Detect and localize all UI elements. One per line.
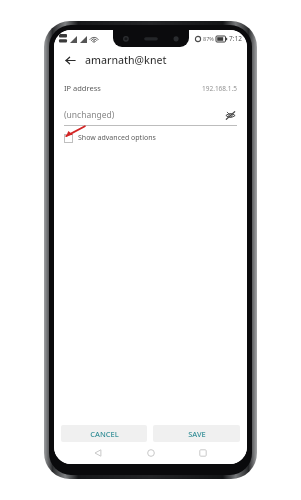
button[interactable]: Show password bbox=[223, 108, 237, 122]
staticText: 7:12 bbox=[229, 34, 242, 43]
button[interactable]: SAVE bbox=[153, 425, 240, 442]
staticText: SAVE bbox=[188, 429, 206, 439]
button[interactable]: Back bbox=[61, 51, 79, 69]
staticText: Show advanced options bbox=[78, 133, 156, 143]
button[interactable]: Back bbox=[90, 445, 106, 461]
staticText: 192.168.1.5 bbox=[202, 84, 237, 93]
staticText: (unchanged) bbox=[64, 109, 115, 121]
staticText: 87% bbox=[203, 35, 214, 42]
staticText: amarnath@knet bbox=[85, 53, 167, 67]
button[interactable]: Home bbox=[143, 445, 159, 461]
button[interactable]: Show advanced options bbox=[64, 133, 156, 143]
button[interactable]: CANCEL bbox=[61, 425, 147, 442]
staticText: CANCEL bbox=[90, 429, 119, 439]
staticText: IP address bbox=[64, 83, 101, 93]
button[interactable]: Recent apps bbox=[195, 445, 211, 461]
